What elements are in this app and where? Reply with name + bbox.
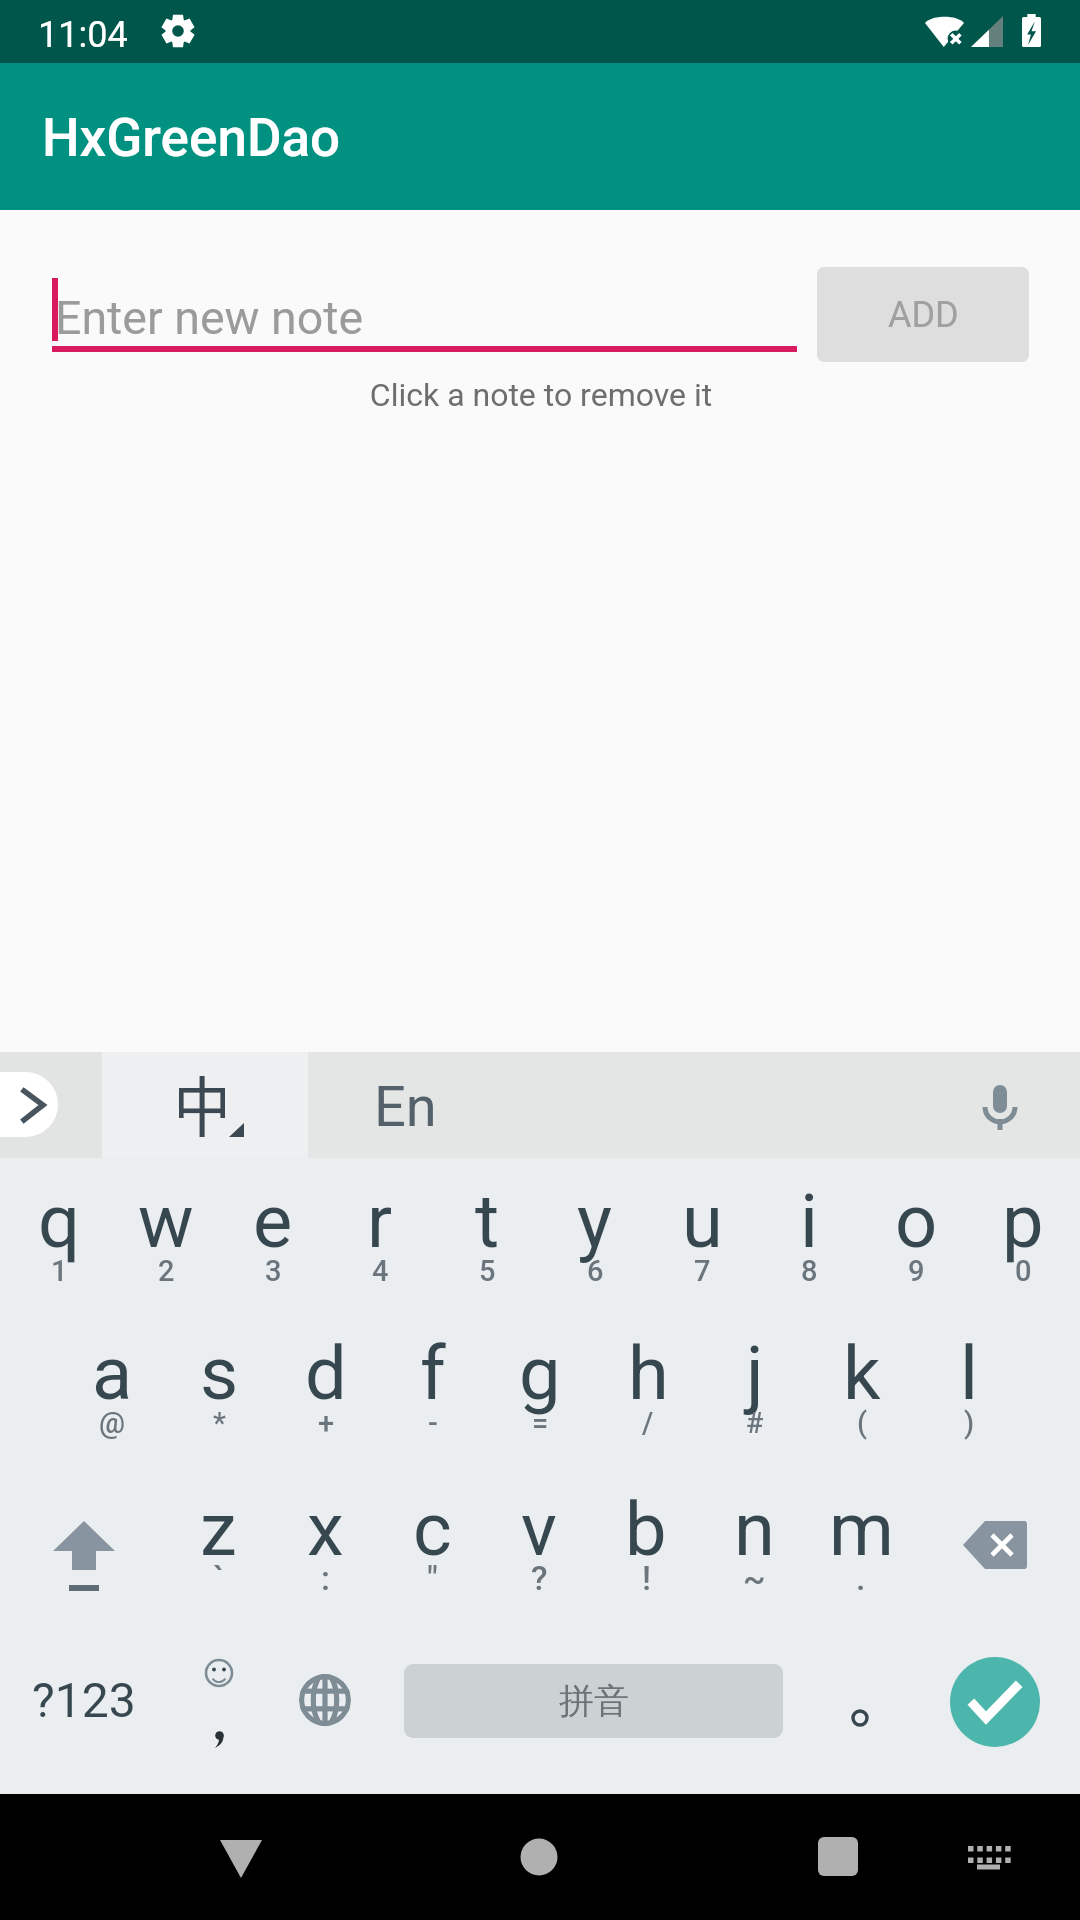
staticText: 5	[479, 1254, 496, 1288]
staticText: c	[413, 1486, 452, 1573]
button[interactable]	[916, 1312, 1022, 1452]
button[interactable]	[702, 1312, 808, 1452]
button[interactable]: ?123	[14, 1640, 154, 1760]
button[interactable]: Backspace	[950, 1500, 1050, 1600]
button[interactable]	[166, 1312, 272, 1452]
staticText: /	[642, 1406, 654, 1440]
staticText: a	[92, 1330, 133, 1417]
staticText: x	[307, 1486, 344, 1573]
staticText: u	[682, 1178, 723, 1265]
staticText: 6	[587, 1254, 604, 1288]
button[interactable]	[6, 1160, 112, 1300]
staticText: @	[99, 1406, 126, 1440]
button[interactable]	[327, 1160, 433, 1300]
button[interactable]: Switch to Chinese	[140, 1052, 308, 1158]
button[interactable]: Enter	[948, 1655, 1040, 1747]
button[interactable]	[113, 1160, 219, 1300]
button[interactable]	[487, 1312, 593, 1452]
button[interactable]	[809, 1312, 915, 1452]
button[interactable]	[649, 1160, 755, 1300]
button[interactable]: Back	[181, 1794, 301, 1914]
staticText: j	[746, 1330, 764, 1417]
staticText: `	[213, 1558, 224, 1598]
staticText: d	[305, 1330, 347, 1417]
button[interactable]	[808, 1468, 914, 1608]
staticText: l	[960, 1330, 978, 1417]
button[interactable]	[380, 1312, 486, 1452]
staticText: )	[964, 1406, 975, 1440]
button[interactable]	[863, 1160, 969, 1300]
staticText: b	[625, 1486, 667, 1573]
button[interactable]: Enter new note	[52, 270, 797, 352]
button[interactable]	[272, 1468, 378, 1608]
staticText: .	[856, 1558, 866, 1598]
button[interactable]: Voice input	[950, 1065, 1050, 1145]
button[interactable]	[379, 1468, 485, 1608]
button[interactable]	[273, 1312, 379, 1452]
button[interactable]	[542, 1160, 648, 1300]
button[interactable]: ADD	[817, 267, 1029, 362]
staticText: 7	[694, 1254, 711, 1288]
staticText: m	[829, 1486, 894, 1573]
staticText: :	[321, 1558, 330, 1598]
button[interactable]: Home	[479, 1794, 599, 1914]
staticText: !	[642, 1558, 651, 1598]
staticText: Enter new note	[55, 291, 364, 345]
staticText: f	[420, 1330, 446, 1417]
staticText: s	[200, 1330, 239, 1417]
staticText: Click a note to remove it	[1, 376, 1080, 1920]
staticText: =	[532, 1406, 549, 1440]
button[interactable]: Period	[820, 1660, 900, 1760]
button[interactable]: 拼音	[404, 1664, 783, 1738]
staticText: t	[475, 1178, 500, 1265]
staticText: ?123	[32, 1672, 136, 1728]
button[interactable]: Switch keyboard	[930, 1794, 1050, 1914]
staticText: q	[38, 1178, 81, 1265]
staticText: "	[427, 1558, 438, 1598]
button[interactable]: Comma	[170, 1640, 270, 1760]
staticText: 8	[801, 1254, 818, 1288]
button[interactable]: Change language	[285, 1650, 371, 1750]
button[interactable]	[165, 1468, 271, 1608]
button[interactable]	[486, 1468, 592, 1608]
staticText: 4	[372, 1254, 389, 1288]
staticText: ~	[743, 1558, 766, 1598]
staticText: 1	[51, 1254, 68, 1288]
staticText: (	[857, 1406, 868, 1440]
staticText: 9	[908, 1254, 925, 1288]
staticText: #	[746, 1406, 764, 1440]
button[interactable]	[220, 1160, 326, 1300]
staticText: p	[1002, 1178, 1044, 1265]
staticText: o	[895, 1178, 938, 1265]
staticText: 3	[265, 1254, 282, 1288]
staticText: 拼音	[559, 1679, 629, 1723]
staticText: HxGreenDao	[42, 107, 341, 169]
staticText: 11:04	[38, 14, 128, 56]
staticText: y	[577, 1178, 613, 1265]
button[interactable]	[970, 1160, 1076, 1300]
button[interactable]: Expand toolbar	[0, 1072, 58, 1137]
staticText: *	[213, 1406, 226, 1440]
staticText: g	[519, 1330, 561, 1417]
staticText: +	[318, 1406, 335, 1440]
staticText: r	[367, 1178, 393, 1265]
staticText: ?	[531, 1558, 548, 1598]
staticText: h	[628, 1330, 669, 1417]
staticText: En	[374, 1074, 437, 1140]
button[interactable]	[434, 1160, 540, 1300]
staticText: k	[843, 1330, 881, 1417]
button[interactable]	[756, 1160, 862, 1300]
staticText: ADD	[888, 294, 959, 336]
staticText: 2	[158, 1254, 175, 1288]
staticText: e	[253, 1178, 293, 1265]
staticText: z	[200, 1486, 237, 1573]
button[interactable]: Recent apps	[778, 1794, 898, 1914]
staticText: n	[734, 1486, 775, 1573]
button[interactable]: Shift	[20, 1490, 150, 1620]
button[interactable]: En	[308, 1052, 908, 1158]
staticText: v	[521, 1486, 557, 1573]
button[interactable]	[59, 1312, 165, 1452]
button[interactable]	[593, 1468, 699, 1608]
button[interactable]	[701, 1468, 807, 1608]
button[interactable]	[595, 1312, 701, 1452]
